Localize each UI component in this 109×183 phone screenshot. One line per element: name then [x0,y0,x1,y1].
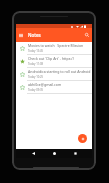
staticText: Today 11:08 [28,62,44,66]
button[interactable]: Navigation menu [16,28,25,42]
button[interactable]: Androidica starting to roll out Android … [16,68,92,81]
staticText: Movies to watch Spectre Mission Impos [28,43,91,48]
staticText: Notes [28,32,41,38]
button[interactable]: Search [82,28,92,42]
staticText: Check out 'Clip Art' - https://clipart.g… [28,56,91,61]
staticText: Androidica starting to roll out Android … [28,69,91,74]
button[interactable]: Add note [78,134,87,143]
button[interactable]: Movies to watch Spectre Mission Impos [16,42,92,55]
staticText: Today 09:35 [28,88,44,92]
button[interactable]: Back [29,149,38,158]
button[interactable]: Check out 'Clip Art' - https://clipart.g… [16,55,92,68]
button[interactable]: Recents [71,149,80,158]
staticText: abhi0ce@gmail.com [28,82,62,87]
staticText: Today 13:45 [28,49,44,53]
button[interactable]: abhi0ce@gmail.com [16,81,92,94]
button[interactable]: Home [50,149,59,158]
staticText: Today 10:25 [28,75,44,79]
